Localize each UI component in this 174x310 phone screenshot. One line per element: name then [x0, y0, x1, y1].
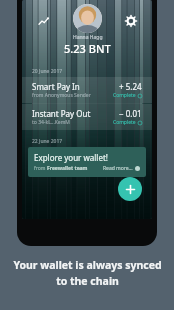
button[interactable]: Add	[118, 177, 142, 201]
button[interactable]: Settings	[123, 13, 139, 29]
staticText: Instant Pay Out	[32, 108, 91, 119]
staticText: Read more...	[103, 165, 133, 172]
staticText: Smart Pay In	[32, 81, 80, 92]
button[interactable]: Instant Pay Out	[22, 104, 152, 130]
staticText: 22 June 2017	[32, 138, 63, 145]
staticText: 20 June 2017	[32, 68, 63, 75]
button[interactable]: Explore your wallet!	[28, 147, 146, 177]
staticText: − 0.01	[119, 108, 142, 119]
staticText: Complete	[113, 119, 136, 126]
staticText: Explore your wallet!	[34, 152, 108, 163]
staticText: 5.23 BNT	[64, 41, 111, 56]
button[interactable]: Statistics	[35, 13, 51, 29]
staticText: to the chain	[56, 274, 119, 288]
staticText: + 5.24	[119, 81, 142, 92]
staticText: from Anonymous Sender	[32, 92, 91, 99]
staticText: Your wallet is always synced	[13, 258, 162, 272]
button[interactable]: Smart Pay In	[22, 77, 152, 103]
staticText: to 34-kL...KemM	[32, 119, 70, 126]
staticText: Complete	[113, 92, 136, 99]
staticText: from	[34, 165, 47, 172]
button[interactable]: Profile	[73, 4, 102, 33]
staticText: Freewallet team	[47, 165, 88, 172]
staticText: Hanna Hagg	[73, 34, 103, 41]
